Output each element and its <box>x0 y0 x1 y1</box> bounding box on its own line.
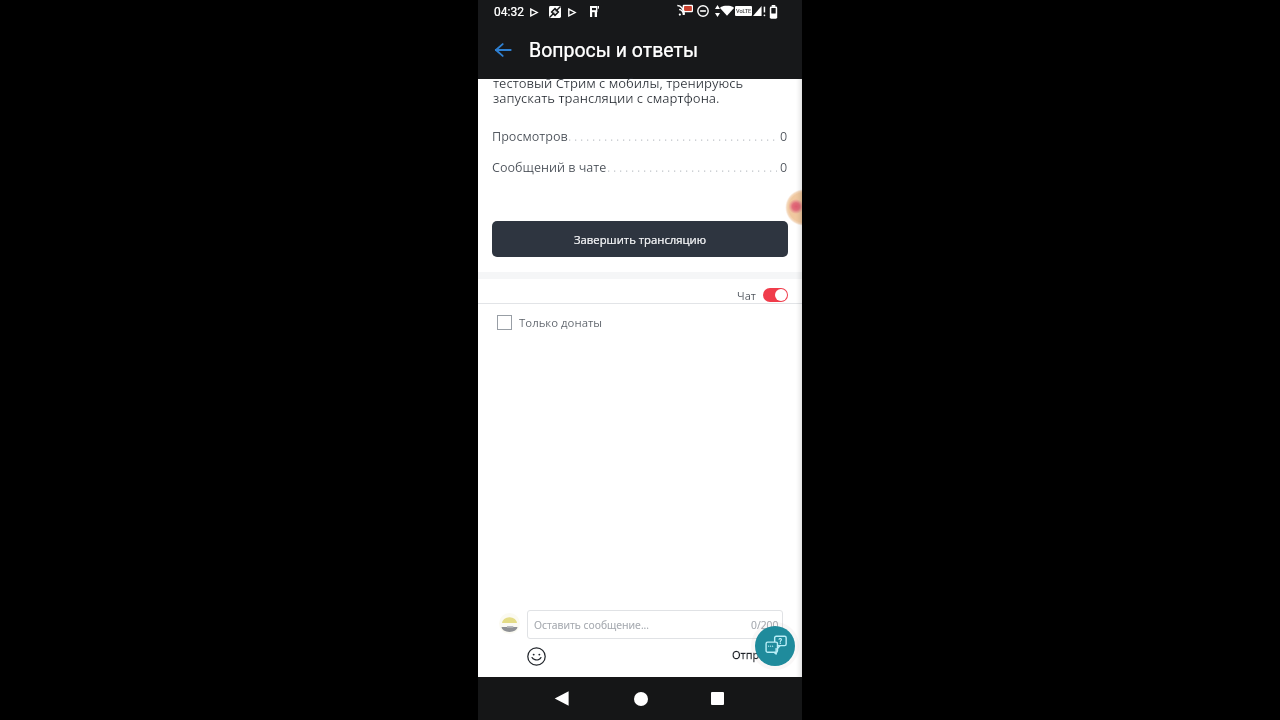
staticText: тестовый Стрим с мобилы, тренируюсь <box>493 74 744 92</box>
staticText: Оставить сообщение... <box>534 618 649 632</box>
staticText: Просмотров <box>492 128 568 144</box>
staticText: 0/200 <box>751 618 779 632</box>
staticText: запускать трансляции с смартфона. <box>493 89 720 107</box>
staticText: Вопросы и ответы <box>529 39 699 62</box>
button[interactable]: Questions and answers <box>755 626 795 666</box>
staticText: 0 <box>780 159 788 175</box>
staticText: Сообщений в чате <box>492 159 607 175</box>
staticText: Завершить трансляцию <box>574 232 707 247</box>
button[interactable]: Отправить <box>728 643 788 665</box>
staticText: Чат <box>737 288 756 303</box>
button[interactable]: Recents <box>697 678 738 719</box>
staticText: 04:32 <box>494 5 524 19</box>
staticText: VoLTE <box>736 8 752 14</box>
button[interactable]: Chat toggle <box>763 288 788 302</box>
staticText: Только донаты <box>519 315 603 331</box>
staticText: Отправить <box>732 647 791 662</box>
button[interactable]: Завершить трансляцию <box>492 221 788 257</box>
button[interactable]: Только донаты <box>497 314 605 331</box>
button[interactable]: Back <box>541 678 582 719</box>
button[interactable]: Home <box>620 678 661 719</box>
button[interactable]: Emoji <box>527 647 546 666</box>
staticText: 0 <box>780 128 788 144</box>
button[interactable]: Оставить сообщение... <box>527 610 783 639</box>
button[interactable]: Back <box>489 36 517 64</box>
